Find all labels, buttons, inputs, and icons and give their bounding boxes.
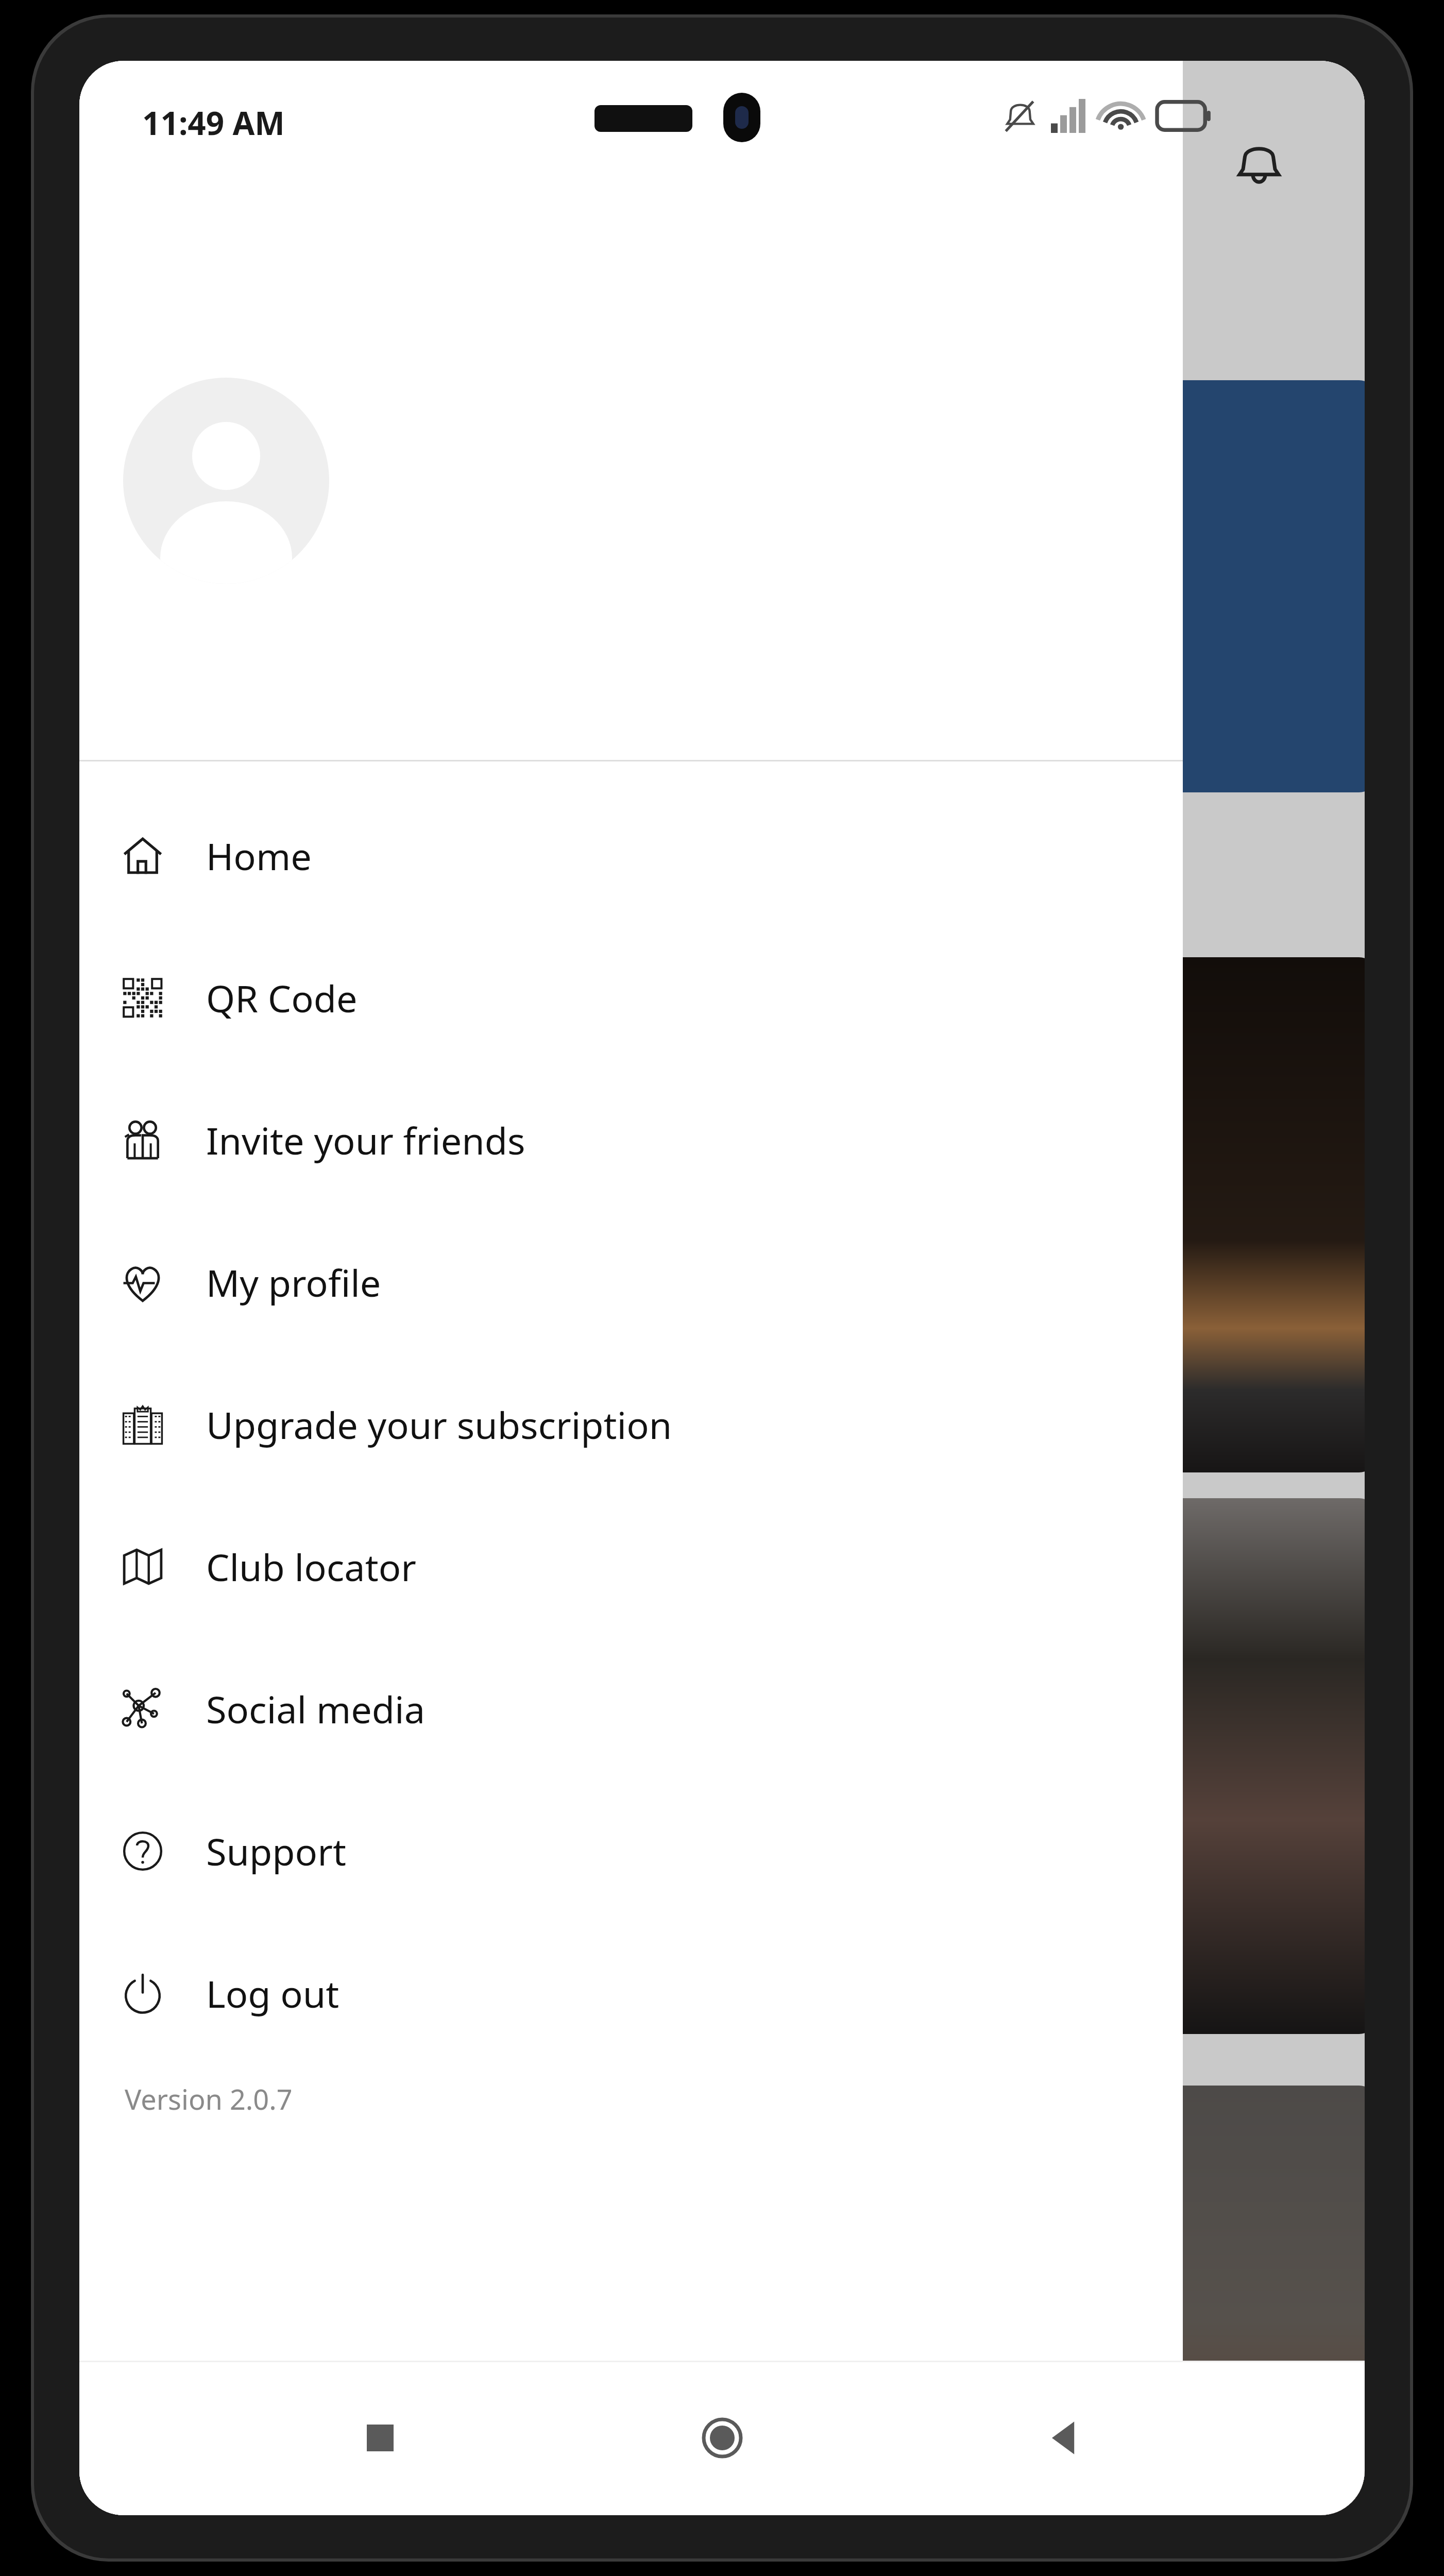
button[interactable]: Notifications [1218, 123, 1300, 205]
button[interactable] [955, 380, 1365, 792]
staticText: Version 2.0.7 [125, 2080, 293, 2118]
button[interactable]: Social media [79, 1638, 1183, 1780]
staticText: Upgrade your subscription [206, 1399, 672, 1450]
staticText: Home [206, 831, 312, 881]
staticText: Invite your friends [206, 1115, 525, 1165]
button[interactable]: Home [681, 2397, 763, 2479]
button[interactable]: Support [79, 1780, 1183, 1922]
button[interactable]: Profile picture [123, 378, 329, 584]
button[interactable] [955, 957, 1365, 1472]
staticText: QR Code [206, 973, 358, 1023]
button[interactable]: Home [79, 785, 1183, 927]
button[interactable]: QR Code [79, 927, 1183, 1069]
button[interactable]: Club locator [79, 1496, 1183, 1638]
button[interactable] [955, 2086, 1365, 2515]
button[interactable]: My profile [79, 1211, 1183, 1353]
staticText: Log out [206, 1968, 339, 2019]
button[interactable]: Upgrade your subscription [79, 1353, 1183, 1496]
button[interactable] [955, 1498, 1365, 2034]
staticText: Club locator [206, 1541, 416, 1592]
staticText: My profile [206, 1257, 381, 1308]
button[interactable]: Back [1023, 2397, 1105, 2479]
button[interactable]: Log out [79, 1922, 1183, 2064]
button[interactable]: Invite your friends [79, 1069, 1183, 1211]
staticText: Social media [206, 1684, 426, 1734]
staticText: 11:49 AM [142, 101, 285, 144]
button[interactable]: Recent apps [339, 2397, 421, 2479]
staticText: Support [206, 1826, 346, 1876]
